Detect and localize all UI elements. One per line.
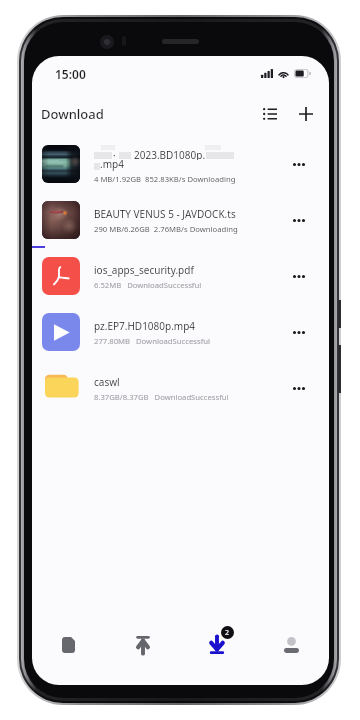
- button[interactable]: ·: [32, 136, 329, 192]
- button[interactable]: More options: [280, 136, 317, 192]
- staticText: ios_apps_security.pdf: [94, 263, 194, 277]
- button[interactable]: caswl: [32, 360, 329, 416]
- button[interactable]: More options: [280, 360, 317, 416]
- staticText: ·: [113, 148, 116, 160]
- staticText: 277.80MB DownloadSuccessful: [94, 336, 211, 346]
- staticText: 15:00: [55, 66, 86, 82]
- button[interactable]: Add: [290, 98, 322, 130]
- staticText: 2: [225, 628, 230, 638]
- staticText: 8.37GB/8.37GB DownloadSuccessful: [94, 392, 229, 402]
- staticText: .mp4: [100, 157, 124, 171]
- staticText: 6.52MB DownloadSuccessful: [94, 280, 202, 290]
- button[interactable]: More options: [280, 192, 317, 248]
- button[interactable]: List view: [254, 98, 286, 130]
- staticText: caswl: [94, 375, 120, 389]
- button[interactable]: Profile: [254, 615, 328, 675]
- button[interactable]: Upload: [106, 615, 180, 675]
- button[interactable]: Files: [32, 615, 106, 675]
- staticText: 2023.BD1080p.: [134, 148, 206, 160]
- button[interactable]: More options: [280, 248, 317, 304]
- button[interactable]: pz.EP7.HD1080p.mp4: [32, 304, 329, 360]
- button[interactable]: BEAUTY VENUS 5 - JAVDOCK.ts: [32, 192, 329, 248]
- button[interactable]: More options: [280, 304, 317, 360]
- staticText: Download: [41, 105, 104, 123]
- staticText: BEAUTY VENUS 5 - JAVDOCK.ts: [94, 207, 236, 221]
- staticText: 290 MB/6.26GB 2.76MB/s Downloading: [94, 224, 238, 234]
- staticText: 4 MB/1.92GB 852.83KB/s Downloading: [94, 174, 236, 184]
- button[interactable]: Downloads: [180, 615, 254, 675]
- staticText: pz.EP7.HD1080p.mp4: [94, 319, 196, 333]
- button[interactable]: ios_apps_security.pdf: [32, 248, 329, 304]
